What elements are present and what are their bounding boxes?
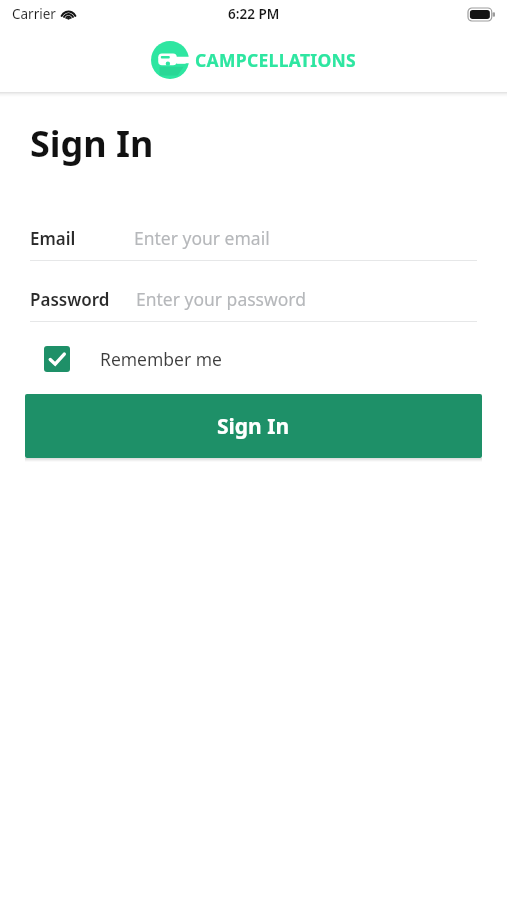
staticText: Sign In bbox=[217, 412, 290, 441]
button[interactable]: Email bbox=[30, 216, 477, 261]
staticText: Carrier bbox=[12, 5, 56, 23]
staticText: CAMPCELLATIONS bbox=[195, 48, 357, 72]
staticText: Remember me bbox=[100, 347, 222, 371]
button[interactable]: Password bbox=[30, 277, 477, 322]
staticText: Enter your email bbox=[134, 226, 270, 250]
button[interactable]: Sign In bbox=[25, 394, 482, 458]
staticText: 6:22 PM bbox=[228, 5, 280, 23]
staticText: Email bbox=[30, 227, 76, 250]
button[interactable]: Remember me checkbox, checked bbox=[44, 346, 222, 372]
staticText: Password bbox=[30, 288, 110, 311]
staticText: Enter your password bbox=[136, 287, 306, 311]
other: Remember me checkbox, checked bbox=[44, 346, 70, 372]
staticText: Sign In bbox=[30, 119, 154, 168]
